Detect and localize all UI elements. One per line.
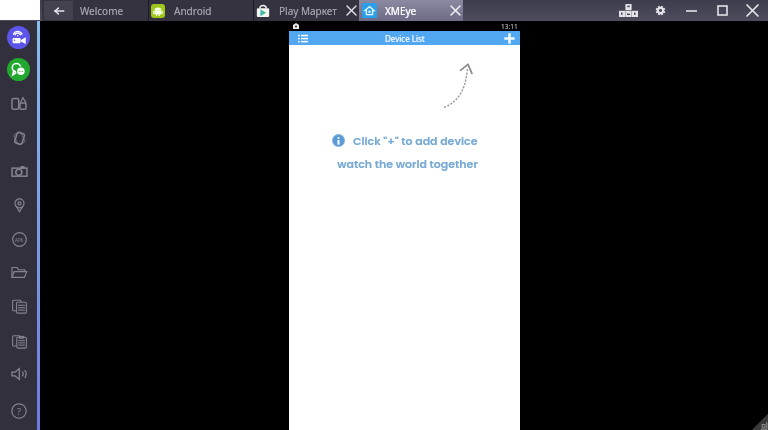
staticText: XMEye bbox=[385, 4, 417, 18]
button[interactable]: Minimize bbox=[676, 0, 706, 21]
button[interactable]: Screenshot bbox=[7, 159, 31, 183]
button[interactable]: Close bbox=[737, 0, 767, 21]
button[interactable]: Multi instance bbox=[7, 91, 31, 115]
button[interactable]: Install APK bbox=[7, 227, 31, 251]
button[interactable]: Maximize bbox=[707, 0, 737, 21]
button[interactable]: Apps bbox=[618, 4, 638, 17]
staticText: Play Маркет bbox=[279, 4, 337, 18]
staticText: watch the world together bbox=[337, 156, 478, 171]
staticText: ? bbox=[17, 405, 21, 417]
button[interactable]: Add device bbox=[499, 31, 519, 45]
button[interactable]: Quick action bbox=[7, 26, 30, 49]
button[interactable]: Close Play Маркет tab bbox=[344, 3, 359, 18]
button[interactable]: Files bbox=[7, 260, 31, 284]
staticText: Click "+" to add device bbox=[353, 133, 478, 148]
staticText: 13:11 bbox=[501, 22, 518, 31]
button[interactable]: Play Маркет bbox=[254, 0, 359, 21]
staticText: Device List bbox=[385, 33, 425, 44]
button[interactable]: Location bbox=[7, 193, 31, 217]
button[interactable]: Welcome bbox=[74, 0, 148, 21]
button[interactable]: Close XMEye tab bbox=[448, 3, 463, 18]
button[interactable]: Paste bbox=[7, 329, 31, 353]
button[interactable]: Rotate bbox=[7, 126, 31, 150]
staticText: APK bbox=[15, 237, 24, 243]
button[interactable]: XMEye bbox=[359, 0, 463, 21]
staticText: Welcome bbox=[80, 4, 124, 18]
button[interactable]: Settings bbox=[646, 0, 674, 21]
button[interactable]: Copy bbox=[7, 294, 31, 318]
button[interactable]: Quick action bbox=[7, 58, 30, 81]
button[interactable]: Back bbox=[44, 1, 73, 20]
button[interactable]: Android bbox=[149, 0, 253, 21]
button[interactable]: Menu bbox=[293, 31, 313, 45]
button[interactable]: Volume bbox=[7, 362, 31, 386]
button[interactable]: Help bbox=[7, 399, 31, 423]
staticText: Android bbox=[174, 4, 212, 18]
